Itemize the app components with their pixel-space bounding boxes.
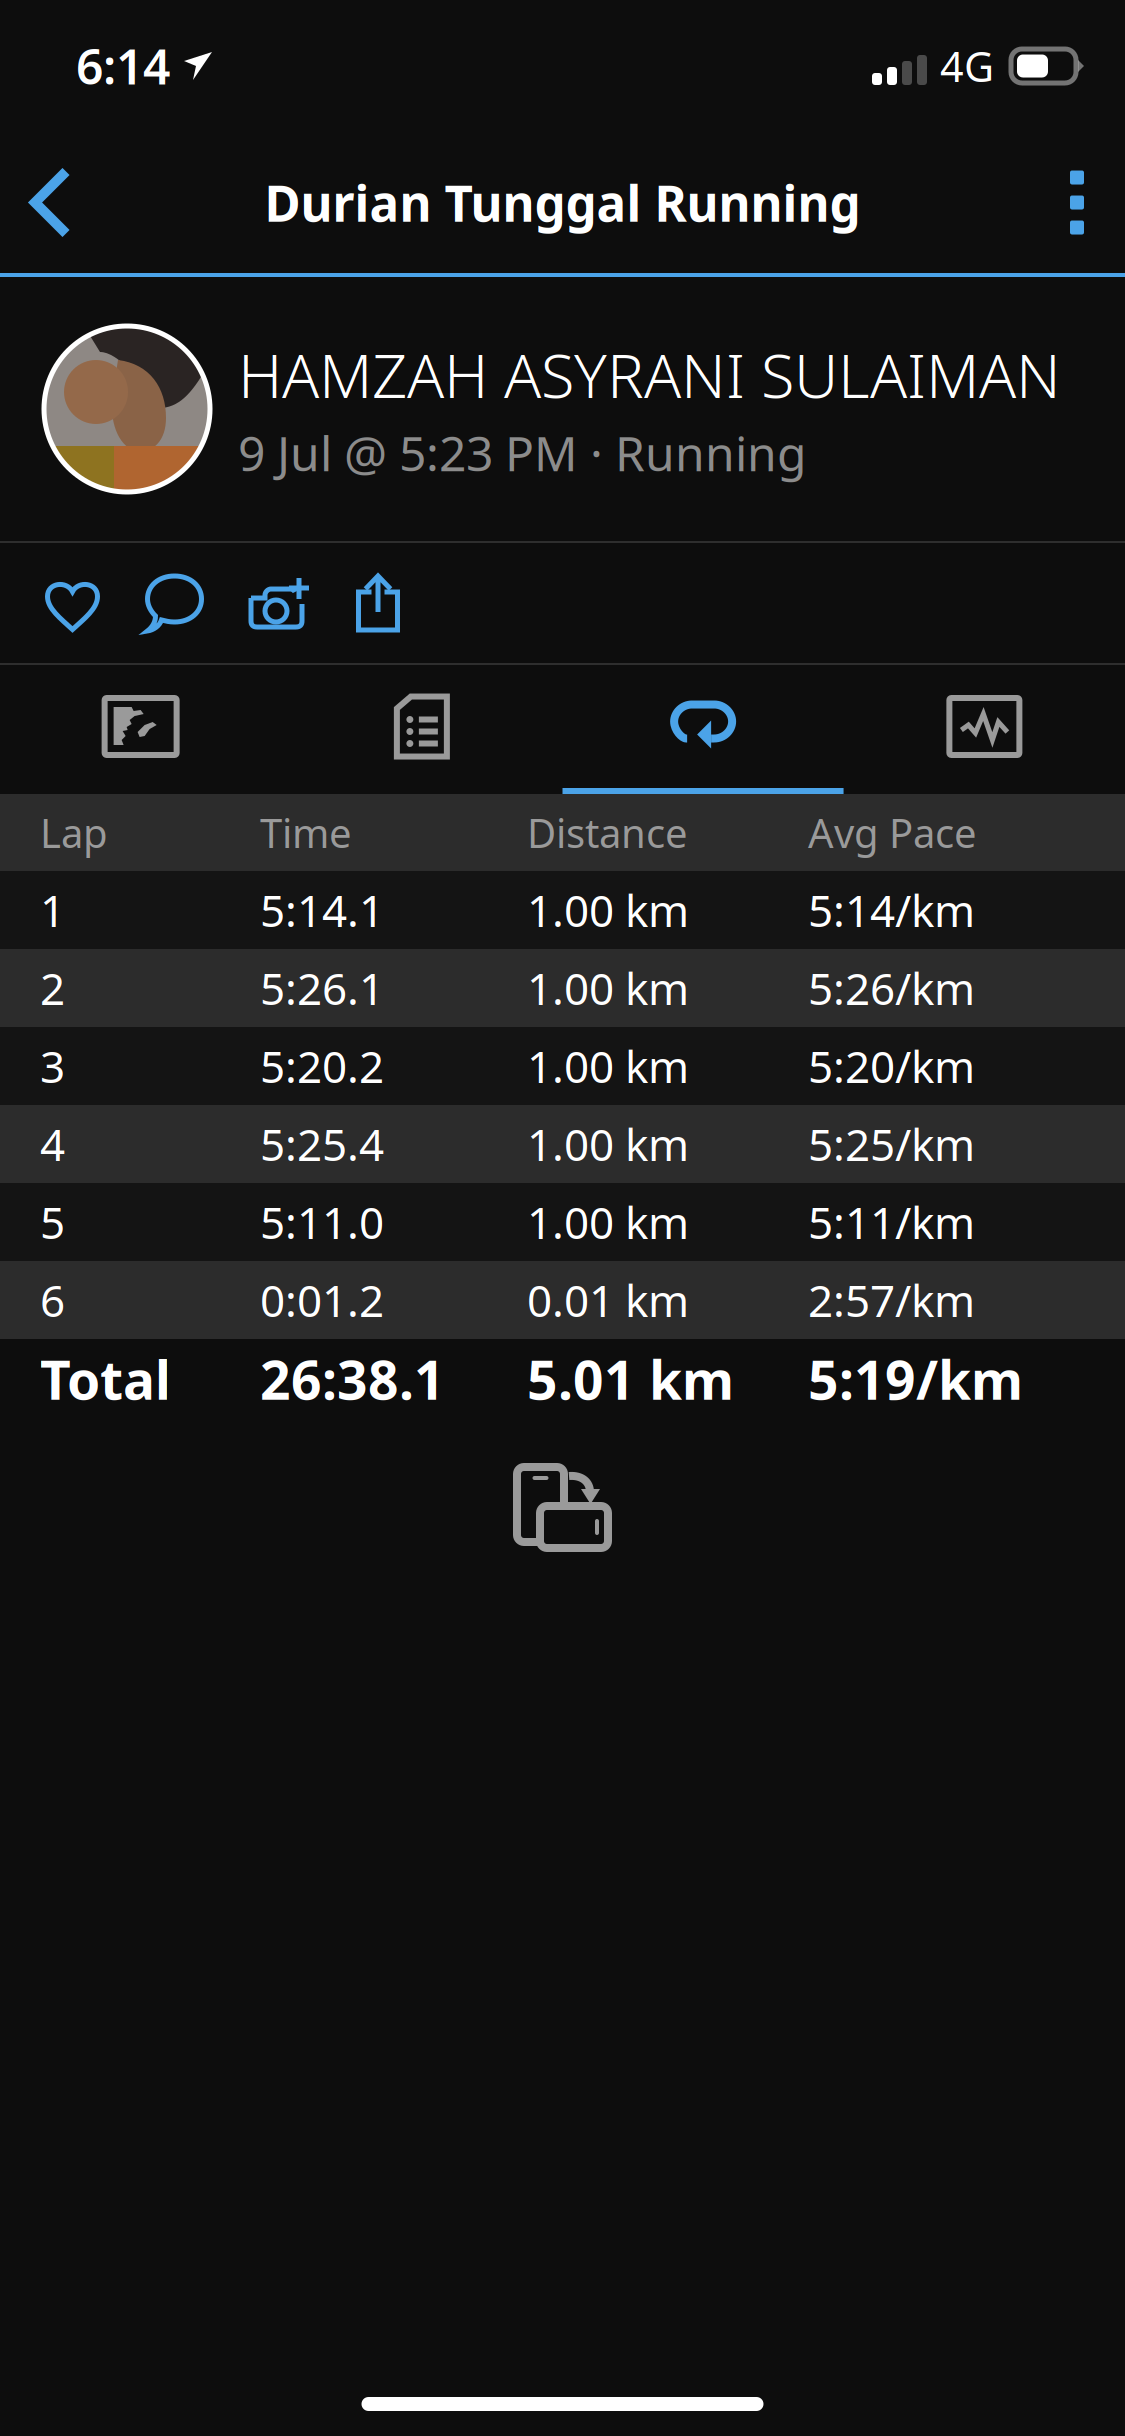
- staticText: 5:14.1: [260, 881, 384, 939]
- staticText: 0:01.2: [260, 1271, 384, 1329]
- staticText: 1.00 km: [527, 1037, 689, 1095]
- button[interactable]: Add photo: [228, 543, 328, 663]
- button[interactable]: Share: [328, 543, 428, 663]
- button[interactable]: Back: [0, 132, 112, 273]
- staticText: Lap: [40, 806, 108, 859]
- staticText: 5: [40, 1193, 65, 1251]
- staticText: Time: [260, 806, 352, 859]
- staticText: 0.01 km: [527, 1271, 689, 1329]
- button[interactable]: Analysis: [844, 665, 1125, 794]
- button[interactable]: Comment: [122, 543, 228, 663]
- staticText: 5:20/km: [808, 1037, 975, 1095]
- button[interactable]: More options: [1026, 132, 1125, 273]
- staticText: 1.00 km: [527, 959, 689, 1017]
- staticText: 5:20.2: [260, 1037, 384, 1095]
- staticText: 5:11.0: [260, 1193, 384, 1251]
- staticText: 1.00 km: [527, 1115, 689, 1173]
- button[interactable]: Rotate device: [517, 1419, 608, 1568]
- staticText: 4G: [940, 39, 994, 93]
- staticText: Total: [40, 1344, 171, 1414]
- staticText: 5:19/km: [808, 1344, 1023, 1414]
- staticText: 5:25.4: [260, 1115, 384, 1173]
- staticText: Durian Tunggal Running: [264, 170, 860, 235]
- button[interactable]: Map: [0, 665, 281, 794]
- staticText: 2: [40, 959, 65, 1017]
- button[interactable]: Like: [22, 543, 122, 663]
- staticText: 9 Jul @ 5:23 PM · Running: [238, 421, 807, 485]
- staticText: 3: [40, 1037, 65, 1095]
- staticText: 2:57/km: [808, 1271, 975, 1329]
- staticText: 5.01 km: [527, 1344, 734, 1414]
- staticText: 5:26.1: [260, 959, 384, 1017]
- staticText: Avg Pace: [808, 806, 977, 859]
- staticText: HAMZAH ASYRANI SULAIMAN: [238, 333, 1061, 415]
- staticText: 6: [40, 1271, 65, 1329]
- staticText: 4: [40, 1115, 65, 1173]
- button[interactable]: Laps: [562, 665, 844, 794]
- button[interactable]: Details: [281, 665, 562, 794]
- staticText: 5:26/km: [808, 959, 975, 1017]
- staticText: 1.00 km: [527, 881, 689, 939]
- staticText: 5:14/km: [808, 881, 975, 939]
- staticText: Distance: [527, 806, 688, 859]
- staticText: 1: [40, 881, 65, 939]
- staticText: 26:38.1: [260, 1344, 445, 1414]
- staticText: 6:14: [76, 34, 170, 98]
- staticText: 5:25/km: [808, 1115, 975, 1173]
- staticText: 5:11/km: [808, 1193, 975, 1251]
- staticText: 1.00 km: [527, 1193, 689, 1251]
